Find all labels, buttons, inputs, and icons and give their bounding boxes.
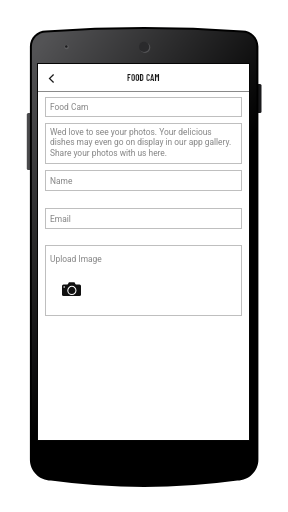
staticText: Name [50, 176, 73, 186]
button[interactable]: Email [45, 208, 242, 229]
button[interactable]: Name [45, 170, 242, 191]
button[interactable]: Back [41, 68, 61, 88]
staticText: Email [50, 214, 71, 224]
button[interactable]: Upload Image [45, 245, 242, 316]
staticText: Upload Image [50, 254, 102, 264]
staticText: Wed love to see your photos. Your delici… [50, 127, 237, 158]
staticText: Food Cam [50, 102, 89, 112]
staticText: FOOD CAM [127, 72, 160, 83]
button[interactable]: Wed love to see your photos. Your delici… [45, 123, 242, 164]
button[interactable]: Food Cam [45, 97, 242, 117]
